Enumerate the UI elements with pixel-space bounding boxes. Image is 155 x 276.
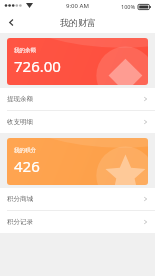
button[interactable]: 积分商城 — [0, 188, 155, 210]
staticText: 9:00 AM — [66, 2, 89, 10]
button[interactable]: 我的余额 — [7, 38, 148, 85]
staticText: 我的积分 — [14, 147, 36, 154]
staticText: 726.00 — [14, 56, 61, 76]
button[interactable]: Back — [0, 12, 22, 33]
button[interactable]: 收支明细 — [0, 111, 155, 133]
staticText: 积分商城 — [7, 195, 33, 203]
staticText: 我的余额 — [14, 47, 36, 54]
button[interactable]: 我的积分 — [7, 138, 148, 185]
button[interactable]: 积分记录 — [0, 211, 155, 233]
staticText: 100% — [121, 3, 136, 10]
staticText: 积分记录 — [7, 218, 33, 226]
staticText: 我的财富 — [60, 17, 96, 28]
staticText: 426 — [14, 156, 40, 176]
staticText: 提现余额 — [7, 95, 33, 103]
button[interactable]: 提现余额 — [0, 88, 155, 110]
staticText: 收支明细 — [7, 118, 33, 126]
